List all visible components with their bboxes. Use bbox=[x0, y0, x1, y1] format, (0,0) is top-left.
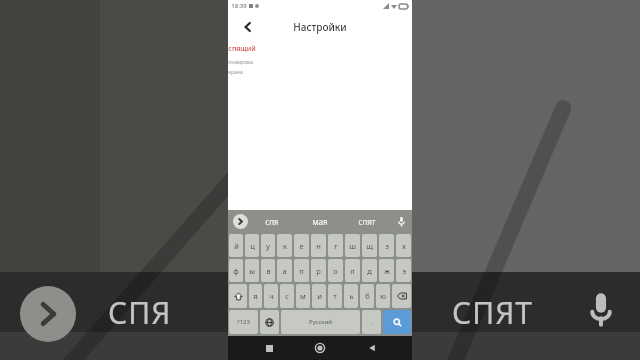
button[interactable]: х bbox=[396, 234, 411, 257]
button[interactable]: Search bbox=[383, 310, 411, 334]
staticText: Настройки bbox=[293, 20, 347, 34]
button[interactable]: е bbox=[294, 234, 309, 257]
button[interactable]: Language bbox=[260, 310, 279, 334]
button[interactable]: д bbox=[362, 259, 377, 282]
button[interactable]: ?123 bbox=[229, 310, 258, 334]
button[interactable]: т bbox=[328, 284, 342, 308]
staticText: п bbox=[299, 266, 304, 276]
staticText: в bbox=[266, 266, 271, 276]
button[interactable]: мая bbox=[296, 210, 343, 232]
button[interactable]: ц bbox=[245, 234, 259, 257]
button[interactable]: Back bbox=[361, 337, 383, 359]
button[interactable]: р bbox=[311, 259, 326, 282]
staticText: т bbox=[333, 291, 337, 301]
button[interactable]: н bbox=[311, 234, 326, 257]
button[interactable]: о bbox=[328, 259, 343, 282]
staticText: ц bbox=[250, 241, 255, 251]
staticText: г bbox=[334, 241, 338, 251]
button[interactable]: . bbox=[362, 310, 381, 334]
staticText: Русский bbox=[309, 318, 332, 326]
staticText: х bbox=[402, 241, 406, 251]
staticText: СПЯ bbox=[108, 292, 172, 333]
button[interactable]: ю bbox=[376, 284, 390, 308]
button[interactable]: а bbox=[277, 259, 292, 282]
staticText: й bbox=[234, 241, 239, 251]
staticText: мая bbox=[312, 216, 328, 227]
staticText: о bbox=[333, 266, 338, 276]
button[interactable]: ф bbox=[229, 259, 243, 282]
button[interactable]: ш bbox=[345, 234, 360, 257]
button[interactable]: Voice input bbox=[390, 210, 412, 232]
staticText: СПЯТ bbox=[452, 292, 534, 333]
button[interactable]: в bbox=[261, 259, 275, 282]
button[interactable]: спят bbox=[343, 210, 390, 232]
staticText: щ bbox=[366, 241, 373, 251]
button[interactable]: л bbox=[345, 259, 360, 282]
button[interactable]: к bbox=[277, 234, 292, 257]
staticText: а bbox=[282, 266, 287, 276]
staticText: ф bbox=[233, 266, 239, 276]
button[interactable]: More suggestions bbox=[233, 214, 248, 229]
button[interactable]: я bbox=[249, 284, 262, 308]
button[interactable]: ж bbox=[379, 259, 394, 282]
staticText: . bbox=[371, 317, 373, 327]
staticText: пожирова bbox=[228, 59, 253, 66]
button[interactable]: Home bbox=[309, 337, 331, 359]
staticText: ч bbox=[269, 291, 274, 301]
button[interactable]: п bbox=[294, 259, 309, 282]
button[interactable]: Backspace bbox=[392, 284, 411, 308]
staticText: ш bbox=[349, 241, 356, 251]
staticText: ь bbox=[349, 291, 354, 301]
button[interactable]: Shift bbox=[229, 284, 247, 308]
staticText: м bbox=[300, 291, 306, 301]
button[interactable]: м bbox=[296, 284, 310, 308]
staticText: е bbox=[299, 241, 304, 251]
staticText: н bbox=[316, 241, 321, 251]
button[interactable]: ч bbox=[264, 284, 278, 308]
staticText: к bbox=[283, 241, 287, 251]
button[interactable]: г bbox=[328, 234, 343, 257]
button[interactable]: й bbox=[229, 234, 243, 257]
staticText: у bbox=[266, 241, 270, 251]
button[interactable]: Back bbox=[238, 17, 258, 37]
staticText: ?123 bbox=[237, 318, 250, 326]
staticText: и bbox=[317, 291, 322, 301]
button[interactable]: Recents bbox=[258, 337, 280, 359]
button[interactable]: Русский bbox=[281, 310, 360, 334]
staticText: р bbox=[316, 266, 321, 276]
button[interactable]: у bbox=[261, 234, 275, 257]
staticText: з bbox=[385, 241, 389, 251]
staticText: крана bbox=[228, 69, 243, 76]
button[interactable]: щ bbox=[362, 234, 377, 257]
button[interactable]: б bbox=[360, 284, 374, 308]
staticText: спя bbox=[265, 216, 279, 227]
button[interactable]: з bbox=[379, 234, 394, 257]
staticText: ж bbox=[384, 266, 390, 276]
button[interactable]: и bbox=[312, 284, 326, 308]
staticText: э bbox=[402, 266, 406, 276]
staticText: 18:39 bbox=[231, 2, 247, 10]
button[interactable]: с bbox=[280, 284, 294, 308]
staticText: б bbox=[365, 291, 370, 301]
button[interactable]: ь bbox=[344, 284, 358, 308]
button[interactable]: э bbox=[396, 259, 411, 282]
button[interactable]: ы bbox=[245, 259, 259, 282]
staticText: ю bbox=[380, 291, 386, 301]
staticText: л bbox=[350, 266, 355, 276]
staticText: я bbox=[253, 291, 258, 301]
staticText: ы bbox=[249, 266, 255, 276]
staticText: спят bbox=[358, 216, 376, 227]
staticText: спящий bbox=[228, 44, 256, 54]
button[interactable]: спя bbox=[248, 210, 296, 232]
staticText: д bbox=[367, 266, 372, 276]
staticText: с bbox=[285, 291, 289, 301]
